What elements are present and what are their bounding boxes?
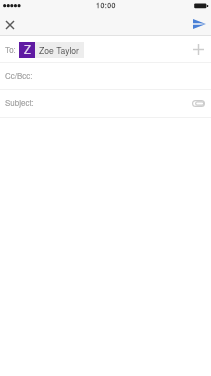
staticText: 10:00 [96,0,117,10]
button[interactable]: Close [0,14,19,35]
staticText: Subject: [5,97,34,108]
button[interactable]: Subject: [0,90,211,117]
staticText: Z [24,41,31,57]
button[interactable]: Add contact [185,36,211,62]
button[interactable]: Cc/Bcc: [0,63,211,89]
button[interactable]: Send [187,14,211,35]
staticText: Cc/Bcc: [5,70,33,81]
staticText: To: [5,44,16,55]
button[interactable]: To: [0,36,211,62]
staticText: Zoe Taylor [39,44,79,56]
button[interactable]: Attach file [185,90,211,117]
